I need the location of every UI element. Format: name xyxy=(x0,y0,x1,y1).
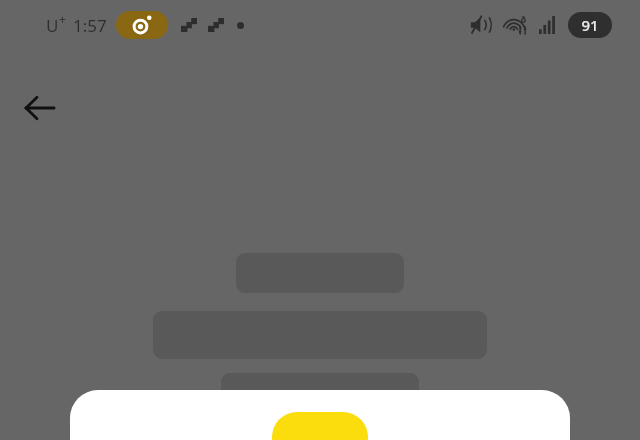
button[interactable]: Camera in use xyxy=(116,11,168,39)
staticText: 91 xyxy=(581,15,599,35)
button[interactable] xyxy=(70,390,570,440)
other: Silent mode xyxy=(470,15,492,35)
button[interactable]: Back xyxy=(14,82,66,134)
staticText: + xyxy=(59,11,66,27)
staticText: 1:57 xyxy=(73,14,107,37)
other: Mobile signal xyxy=(539,16,557,34)
other: Wi-Fi 6 xyxy=(504,15,530,35)
staticText: U xyxy=(46,14,59,37)
